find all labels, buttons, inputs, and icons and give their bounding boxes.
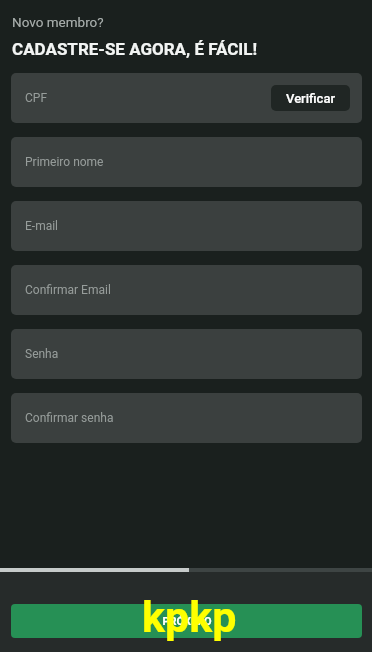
staticText: kpkp: [142, 592, 237, 642]
staticText: Primeiro nome: [25, 155, 104, 169]
staticText: CADASTRE-SE AGORA, É FÁCIL!: [12, 39, 258, 59]
button[interactable]: PRÓXIMO: [11, 604, 362, 638]
staticText: CPF: [25, 91, 48, 105]
staticText: E-mail: [25, 219, 59, 233]
staticText: PRÓXIMO: [162, 615, 212, 628]
staticText: Confirmar senha: [25, 411, 114, 425]
staticText: Confirmar Email: [25, 283, 111, 297]
staticText: Verificar: [286, 91, 335, 106]
button[interactable]: Confirmar Email: [11, 265, 362, 315]
button[interactable]: Verificar: [271, 85, 350, 111]
button[interactable]: E-mail: [11, 201, 362, 251]
button[interactable]: CPF: [11, 73, 362, 123]
staticText: Novo membro?: [12, 14, 104, 30]
button[interactable]: Senha: [11, 329, 362, 379]
button[interactable]: Confirmar senha: [11, 393, 362, 443]
button[interactable]: Primeiro nome: [11, 137, 362, 187]
staticText: Senha: [25, 347, 59, 361]
